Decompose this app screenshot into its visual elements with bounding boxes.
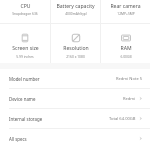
staticText: Internal storage <box>9 116 43 122</box>
staticText: Device name <box>9 96 36 102</box>
staticText: Battery capacity <box>56 3 95 9</box>
button[interactable]: Device name <box>0 89 150 109</box>
staticText: All specs <box>9 136 27 142</box>
staticText: Redmi <box>123 96 136 102</box>
staticText: 2160 x 1080 <box>66 54 85 58</box>
staticText: Resolution <box>63 45 89 51</box>
staticText: Total 64.00GB <box>109 116 136 122</box>
button[interactable]: RAM <box>101 24 150 63</box>
button[interactable]: Model number <box>0 69 150 89</box>
other: RAM <box>121 33 131 43</box>
staticText: CPU <box>20 3 31 9</box>
staticText: 5.99 inches <box>16 54 34 58</box>
staticText: Rear camera <box>110 3 141 9</box>
staticText: RAM <box>120 45 132 51</box>
button[interactable]: Battery capacity <box>51 0 100 23</box>
other: Open Device name <box>138 96 143 101</box>
staticText: Screen size <box>12 45 39 51</box>
button[interactable]: All specs <box>0 129 150 148</box>
button[interactable]: CPU <box>0 0 50 23</box>
staticText: Model number <box>9 76 40 82</box>
button[interactable]: Screen size <box>0 24 50 63</box>
other: Open Internal storage <box>138 116 143 121</box>
other: Open All specs <box>138 136 143 141</box>
other: Resolution <box>71 33 81 43</box>
other: Screen size <box>20 33 30 43</box>
button[interactable]: Rear camera <box>101 0 150 23</box>
staticText: Snapdragon 636 <box>12 11 38 15</box>
staticText: 12MP+5MP <box>117 11 135 15</box>
staticText: 4000mAh(typ) <box>65 11 87 15</box>
staticText: Redmi Note 5 <box>116 76 143 82</box>
button[interactable]: Resolution <box>51 24 100 63</box>
staticText: 6.00GB <box>120 54 132 58</box>
button[interactable]: Internal storage <box>0 109 150 129</box>
